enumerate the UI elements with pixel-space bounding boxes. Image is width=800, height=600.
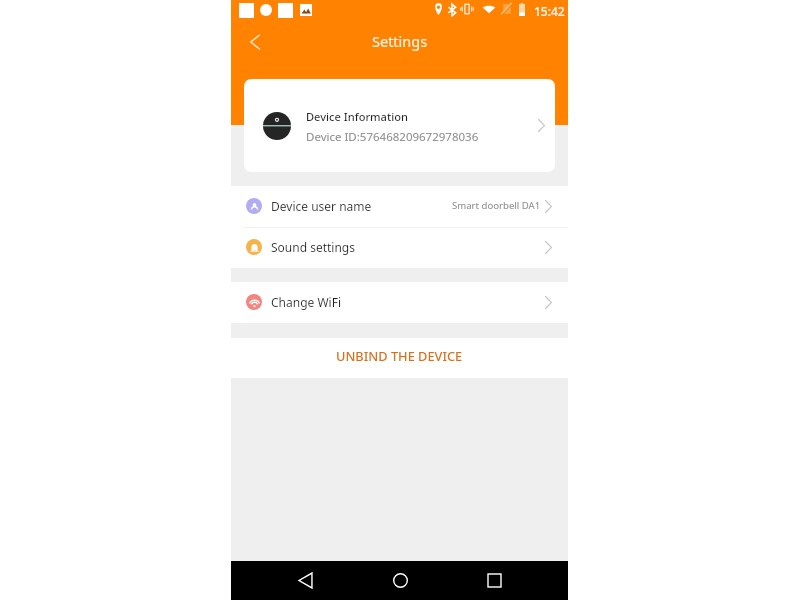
staticText: 15:42	[534, 3, 565, 19]
staticText: Change WiFi	[271, 294, 341, 310]
button[interactable]: Device Information	[244, 79, 555, 172]
staticText: Smart doorbell DA1	[452, 199, 541, 212]
staticText: Sound settings	[271, 239, 356, 255]
button[interactable]: Home	[380, 561, 420, 600]
button[interactable]: Recents	[474, 561, 514, 600]
button[interactable]: Device user name	[231, 186, 568, 227]
staticText: Settings	[372, 31, 428, 51]
button[interactable]: UNBIND THE DEVICE	[231, 338, 568, 378]
button[interactable]: Back	[285, 561, 325, 600]
button[interactable]: Change WiFi	[231, 282, 568, 323]
staticText: Device ID:576468209672978036	[306, 129, 479, 145]
staticText: UNBIND THE DEVICE	[336, 347, 463, 364]
staticText: Device user name	[271, 198, 372, 214]
button[interactable]: Sound settings	[231, 227, 568, 268]
staticText: Device Information	[306, 109, 408, 124]
button[interactable]: Back	[237, 24, 273, 60]
